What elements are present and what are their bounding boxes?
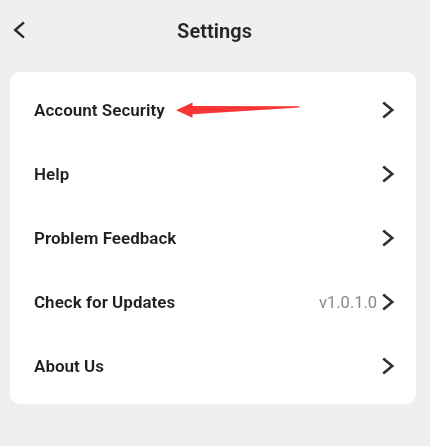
- button[interactable]: Back: [0, 8, 44, 52]
- staticText: Problem Feedback: [34, 228, 177, 248]
- staticText: Help: [34, 164, 70, 184]
- button[interactable]: Check for Updates: [10, 270, 416, 334]
- button[interactable]: Account Security: [10, 78, 416, 142]
- button[interactable]: Help: [10, 142, 416, 206]
- staticText: About Us: [34, 356, 105, 376]
- button[interactable]: About Us: [10, 334, 416, 398]
- button[interactable]: Problem Feedback: [10, 206, 416, 270]
- staticText: Settings: [177, 19, 252, 42]
- staticText: Account Security: [34, 100, 165, 120]
- staticText: v1.0.1.0: [319, 293, 378, 312]
- staticText: Check for Updates: [34, 292, 176, 312]
